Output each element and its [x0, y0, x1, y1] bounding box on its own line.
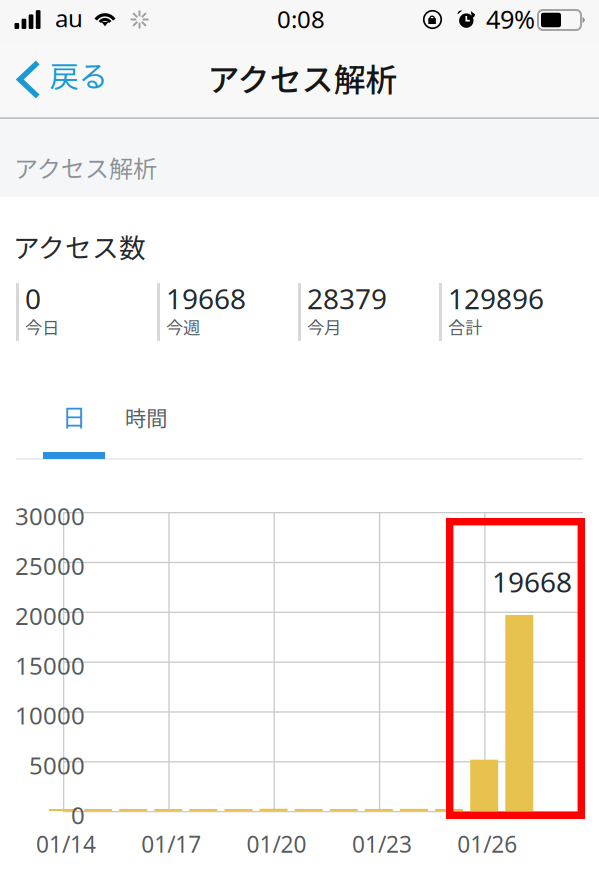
staticText: 10000: [15, 699, 85, 731]
staticText: 今日: [25, 314, 59, 339]
staticText: アクセス解析: [14, 150, 157, 185]
staticText: 19668: [166, 280, 246, 317]
staticText: 日: [62, 399, 86, 433]
staticText: 01/26: [457, 829, 517, 859]
staticText: 合計: [448, 314, 482, 339]
staticText: アクセス解析: [207, 54, 397, 101]
staticText: au: [55, 2, 83, 34]
staticText: 25000: [15, 550, 85, 582]
staticText: 0: [71, 799, 85, 831]
button[interactable]: 戻る: [0, 50, 119, 111]
staticText: 28379: [307, 280, 387, 317]
staticText: 49%: [486, 2, 535, 36]
staticText: 129896: [448, 280, 544, 317]
staticText: 20000: [15, 600, 85, 632]
staticText: 0: [25, 280, 41, 317]
staticText: 15000: [15, 649, 85, 681]
staticText: 30000: [15, 500, 85, 532]
staticText: 戻る: [49, 53, 107, 96]
staticText: 今週: [166, 314, 200, 339]
staticText: 今月: [307, 314, 341, 339]
staticText: 0:08: [277, 3, 325, 35]
staticText: 01/17: [141, 829, 201, 859]
button[interactable]: 日: [43, 385, 105, 447]
staticText: アクセス数: [13, 227, 146, 266]
staticText: 01/14: [36, 829, 96, 859]
button[interactable]: 時間: [113, 386, 179, 448]
staticText: 時間: [125, 402, 167, 432]
staticText: 5000: [29, 749, 85, 781]
staticText: 19668: [492, 563, 572, 600]
staticText: 01/23: [352, 829, 412, 859]
staticText: 01/20: [247, 829, 307, 859]
